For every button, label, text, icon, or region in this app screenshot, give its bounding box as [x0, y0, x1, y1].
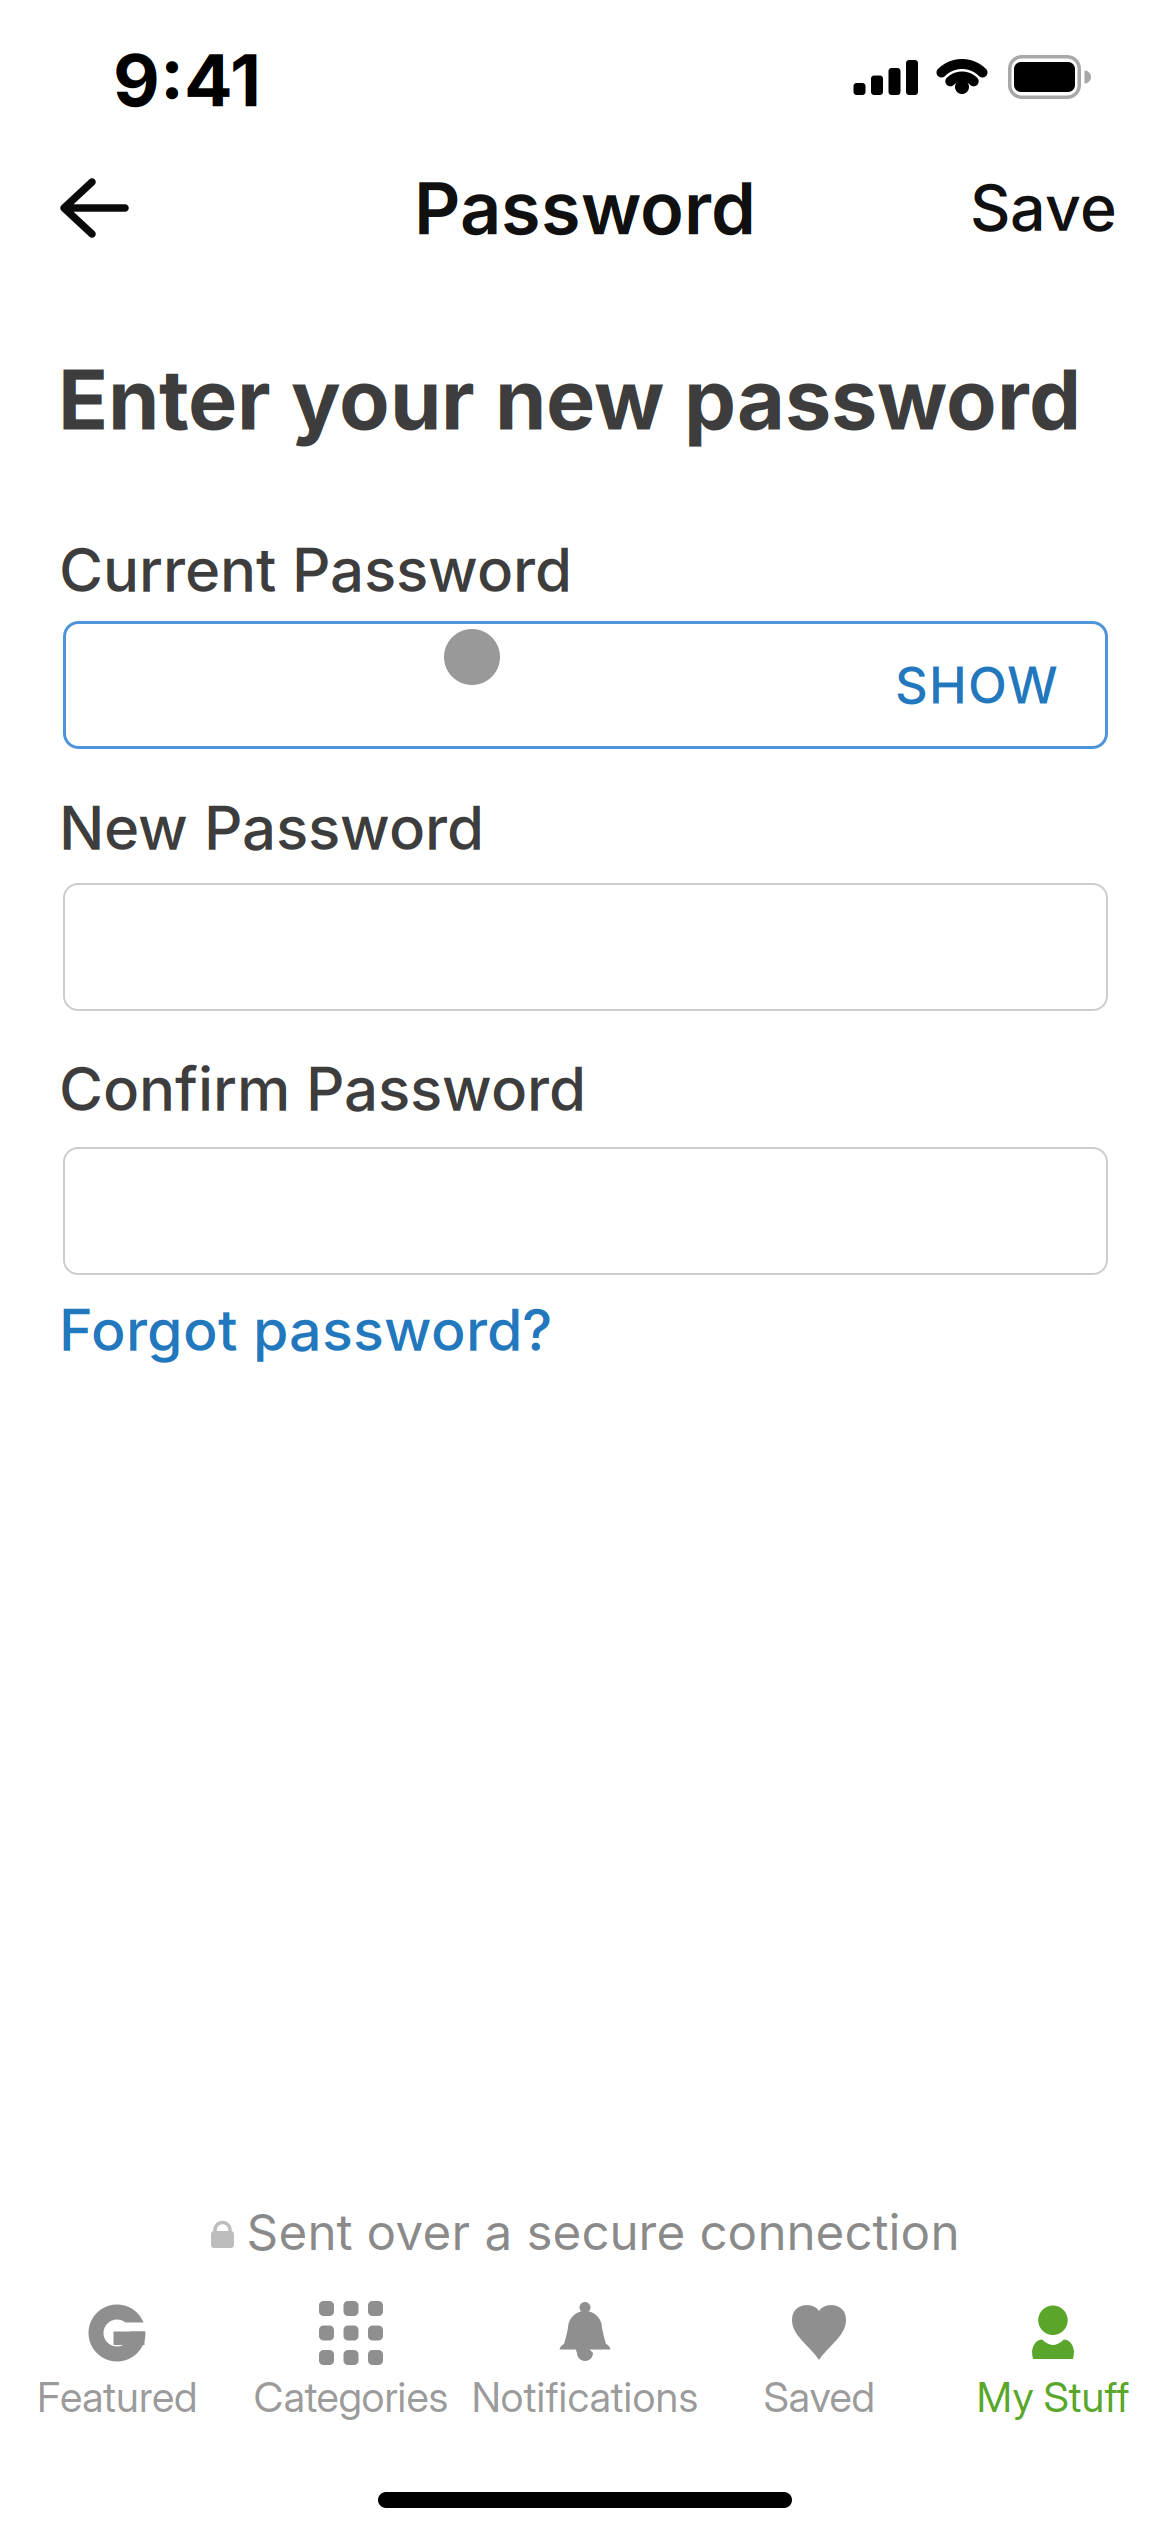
button[interactable]: [63, 883, 1108, 1011]
button[interactable]: Categories: [234, 2301, 468, 2419]
button[interactable]: Forgot password?: [63, 1300, 556, 1360]
button[interactable]: My Stuff: [936, 2301, 1170, 2419]
staticText: Notifications: [471, 2373, 698, 2421]
button[interactable]: Saved: [702, 2301, 936, 2419]
staticText: 9:41: [113, 37, 261, 122]
staticText: New Password: [59, 793, 484, 863]
button[interactable]: SHOW: [895, 655, 1108, 715]
staticText: Enter your new password: [58, 351, 1081, 448]
staticText: Password: [414, 165, 756, 250]
staticText: Confirm Password: [59, 1054, 586, 1124]
staticText: Saved: [763, 2373, 874, 2421]
staticText: Current Password: [59, 535, 572, 605]
button[interactable]: Featured: [0, 2301, 234, 2419]
staticText: SHOW: [895, 655, 1058, 715]
staticText: Categories: [253, 2373, 448, 2421]
button[interactable]: Notifications: [468, 2301, 702, 2419]
button[interactable]: [0, 179, 128, 237]
button[interactable]: SHOW: [63, 621, 1108, 749]
staticText: Sent over a secure connection: [246, 2203, 959, 2261]
button[interactable]: [63, 1147, 1108, 1275]
staticText: Save: [970, 171, 1117, 245]
staticText: Forgot password?: [59, 1296, 552, 1364]
staticText: My Stuff: [976, 2373, 1129, 2421]
button[interactable]: Save: [970, 171, 1170, 245]
staticText: Featured: [37, 2373, 197, 2421]
